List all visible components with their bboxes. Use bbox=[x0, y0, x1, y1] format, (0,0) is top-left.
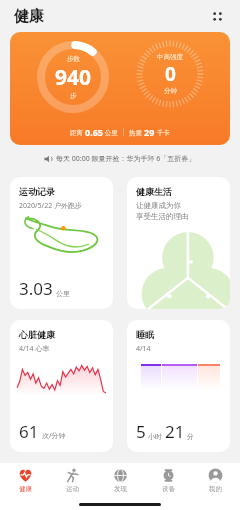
staticText: 每天 00:00 限量开抢：华为手环 6「五折券」 bbox=[56, 154, 196, 164]
staticText: 中高强度 bbox=[157, 53, 183, 61]
staticText: 29 bbox=[144, 126, 155, 138]
button[interactable]: 健康生活 bbox=[127, 177, 230, 309]
staticText: 健康生活 bbox=[136, 186, 172, 197]
staticText: 我的 bbox=[209, 485, 222, 493]
staticText: 健康 bbox=[14, 7, 44, 26]
staticText: 2020/5/22 户外跑步 bbox=[19, 201, 83, 211]
staticText: 距离 bbox=[70, 128, 85, 137]
staticText: 运动记录 bbox=[19, 186, 55, 197]
staticText: 0 bbox=[165, 61, 176, 87]
staticText: 3.03 bbox=[19, 277, 53, 300]
button[interactable]: 健康 bbox=[2, 466, 48, 495]
staticText: 分钟 bbox=[164, 87, 177, 95]
staticText: 小时 bbox=[148, 432, 162, 441]
staticText: 0.65 bbox=[85, 126, 103, 138]
staticText: 步数 bbox=[67, 55, 80, 63]
staticText: 分 bbox=[187, 432, 194, 441]
staticText: 热量 bbox=[129, 128, 144, 137]
button[interactable]: 步数 bbox=[10, 32, 230, 145]
button[interactable]: 心脏健康 bbox=[10, 320, 113, 452]
staticText: 5 bbox=[136, 420, 146, 443]
button[interactable]: 设备 bbox=[145, 466, 191, 495]
staticText: 4/14 bbox=[136, 344, 151, 354]
button[interactable]: More options bbox=[206, 5, 228, 27]
staticText: 设备 bbox=[162, 485, 175, 493]
staticText: 公里 bbox=[103, 128, 118, 137]
button[interactable]: 睡眠 bbox=[127, 320, 230, 452]
staticText: 千卡 bbox=[155, 128, 170, 137]
staticText: 步 bbox=[70, 92, 77, 100]
button[interactable]: 每天 00:00 限量开抢：华为手环 6「五折券」 bbox=[0, 145, 240, 173]
staticText: 61 bbox=[19, 420, 39, 443]
staticText: 睡眠 bbox=[136, 329, 154, 340]
staticText: 4/14 心率 bbox=[19, 344, 50, 354]
staticText: 心脏健康 bbox=[19, 329, 55, 340]
button[interactable]: 运动记录 bbox=[10, 177, 113, 309]
staticText: 公里 bbox=[56, 289, 70, 298]
staticText: 940 bbox=[55, 63, 92, 92]
staticText: 21 bbox=[165, 420, 185, 443]
button[interactable]: 运动 bbox=[49, 466, 95, 495]
staticText: 运动 bbox=[66, 485, 79, 493]
staticText: 健康 bbox=[19, 485, 32, 493]
staticText: 让健康成为你 享受生活的理由 bbox=[136, 201, 189, 221]
button[interactable]: 发现 bbox=[97, 466, 143, 495]
staticText: 次/分钟 bbox=[42, 431, 66, 441]
staticText: 发现 bbox=[114, 485, 127, 493]
button[interactable]: 我的 bbox=[192, 466, 238, 495]
